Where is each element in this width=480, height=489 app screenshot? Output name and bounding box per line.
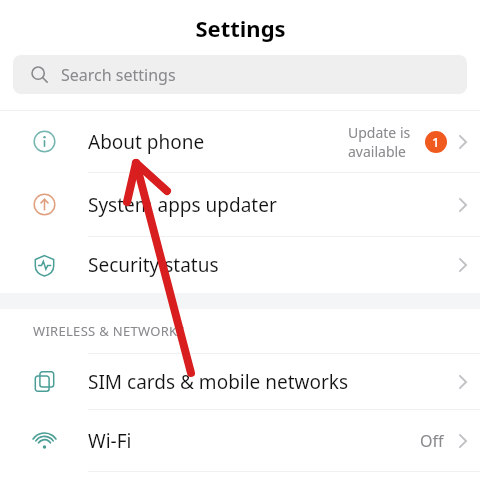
button[interactable]: About phone bbox=[0, 111, 480, 172]
staticText: Wi-Fi bbox=[88, 428, 132, 454]
staticText: Update is bbox=[348, 123, 411, 142]
button[interactable]: Search settings bbox=[13, 55, 467, 94]
staticText: System apps updater bbox=[88, 192, 277, 218]
button[interactable]: SIM cards & mobile networks bbox=[0, 354, 480, 409]
staticText: About phone bbox=[88, 129, 205, 155]
staticText: Search settings bbox=[61, 64, 176, 86]
staticText: WIRELESS & NETWORKS bbox=[33, 322, 185, 340]
staticText: available bbox=[348, 142, 407, 161]
staticText: Settings bbox=[195, 13, 286, 43]
button[interactable]: System apps updater bbox=[0, 173, 480, 236]
button[interactable]: Wi-Fi bbox=[0, 410, 480, 471]
staticText: SIM cards & mobile networks bbox=[88, 369, 349, 395]
staticText: Security status bbox=[88, 252, 219, 278]
staticText: Off bbox=[420, 430, 444, 452]
button[interactable]: Security status bbox=[0, 237, 480, 293]
staticText: 1 bbox=[432, 133, 440, 151]
